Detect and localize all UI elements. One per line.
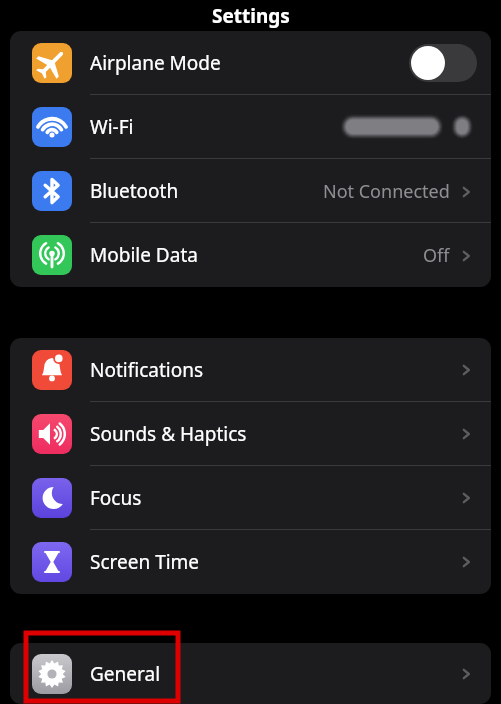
button[interactable]: General [10, 643, 491, 704]
staticText: Off [423, 243, 450, 268]
staticText: Notifications [90, 357, 204, 383]
staticText: Focus [90, 485, 142, 511]
staticText: Airplane Mode [90, 50, 221, 76]
button[interactable]: Mobile Data [10, 223, 491, 287]
staticText: Mobile Data [90, 242, 198, 268]
staticText: Screen Time [90, 549, 200, 575]
staticText: Wi-Fi [90, 114, 134, 140]
button[interactable]: Airplane Mode toggle [409, 44, 477, 82]
staticText: Not Connected [323, 179, 450, 204]
button[interactable]: Wi-Fi [10, 95, 491, 159]
button[interactable]: Focus [10, 466, 491, 530]
button[interactable]: Airplane Mode [10, 31, 491, 95]
button[interactable]: Sounds & Haptics [10, 402, 491, 466]
button[interactable]: Bluetooth [10, 159, 491, 223]
button[interactable]: Screen Time [10, 530, 491, 594]
staticText: Bluetooth [90, 178, 179, 204]
staticText: Sounds & Haptics [90, 421, 247, 447]
button[interactable]: Notifications [10, 338, 491, 402]
staticText: General [90, 661, 161, 687]
staticText: Settings [212, 3, 290, 29]
